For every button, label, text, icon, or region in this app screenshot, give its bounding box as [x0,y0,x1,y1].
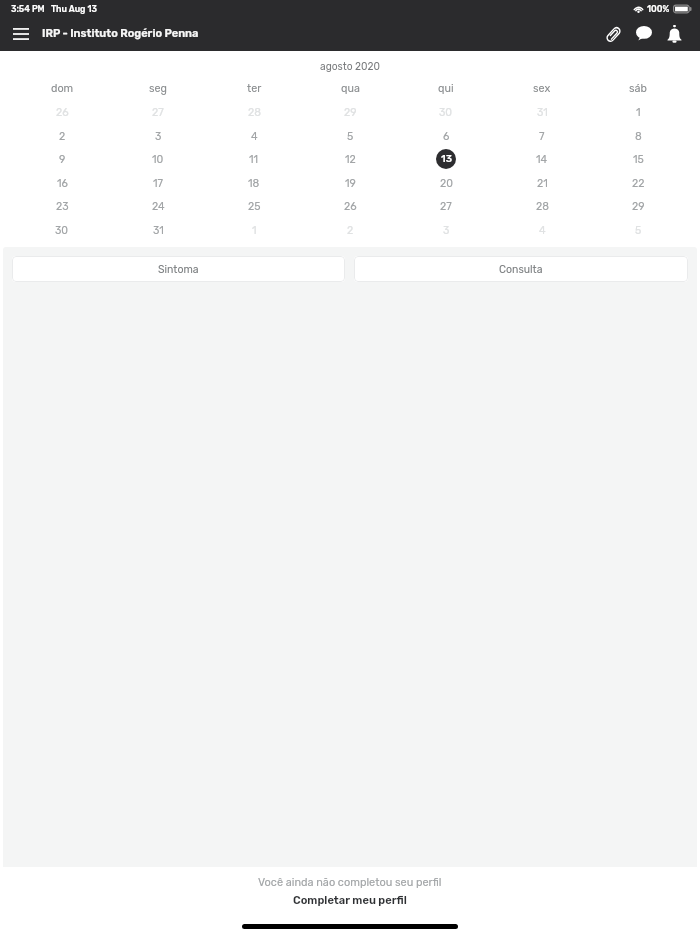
button[interactable]: 11 [243,148,265,170]
button[interactable]: 26 [339,195,361,217]
button[interactable]: 20 [435,172,457,194]
staticText: Thu Aug 13 [51,4,97,14]
staticText: 3 [443,224,450,237]
staticText: 27 [440,200,452,213]
staticText: 16 [57,177,68,190]
button[interactable]: 22 [627,172,649,194]
staticText: Você ainda não completou seu perfil [258,876,442,889]
staticText: sáb [629,82,647,95]
button[interactable]: 13 [436,149,456,169]
button[interactable]: 24 [147,195,169,217]
staticText: 20 [440,177,453,190]
button[interactable]: 30 [435,101,457,123]
staticText: 12 [345,153,356,166]
button[interactable]: 16 [51,172,73,194]
button[interactable]: 27 [435,195,457,217]
button[interactable]: 15 [627,148,649,170]
staticText: 29 [344,106,357,119]
button[interactable]: 6 [435,125,457,147]
button[interactable]: 28 [531,195,553,217]
button[interactable]: 30 [51,219,73,241]
staticText: 30 [55,224,69,237]
staticText: 13 [441,153,452,165]
staticText: 10 [152,153,164,166]
staticText: sex [533,82,551,95]
button[interactable]: 4 [531,219,553,241]
staticText: qui [438,82,454,95]
button[interactable]: 18 [243,172,265,194]
button[interactable]: 28 [243,101,265,123]
staticText: 28 [248,106,261,119]
button[interactable]: 2 [339,219,361,241]
button[interactable]: 27 [147,101,169,123]
button[interactable]: Completar meu perfil [287,892,413,909]
button[interactable]: 14 [531,148,553,170]
staticText: Consulta [499,263,543,275]
staticText: 30 [439,106,453,119]
staticText: seg [149,82,167,95]
button[interactable]: Consulta [354,256,688,282]
staticText: 7 [539,130,545,143]
staticText: 2 [347,224,354,237]
staticText: 6 [443,130,450,143]
staticText: 26 [56,106,69,119]
staticText: 25 [248,200,261,213]
staticText: IRP - Instituto Rogério Penna [42,27,199,40]
button[interactable]: 8 [627,125,649,147]
button[interactable]: 1 [243,219,265,241]
staticText: 4 [539,224,546,237]
button[interactable]: Messages [629,19,659,49]
staticText: 27 [152,106,164,119]
staticText: 17 [153,177,163,190]
button[interactable]: Notifications [659,19,689,49]
button[interactable]: 12 [339,148,361,170]
staticText: qua [341,82,360,95]
staticText: 9 [59,153,66,166]
button[interactable]: Attachments [598,19,628,49]
staticText: 23 [56,200,69,213]
staticText: 2 [59,130,66,143]
button[interactable]: 31 [531,101,553,123]
button[interactable]: 10 [147,148,169,170]
button[interactable]: 25 [243,195,265,217]
button[interactable]: 5 [627,219,649,241]
staticText: Completar meu perfil [293,894,407,907]
staticText: 31 [153,224,164,237]
staticText: 26 [344,200,357,213]
button[interactable]: Sintoma [12,256,345,282]
button[interactable]: 21 [531,172,553,194]
staticText: 22 [632,177,645,190]
button[interactable]: 4 [243,125,265,147]
staticText: 8 [635,130,642,143]
button[interactable]: 29 [339,101,361,123]
button[interactable]: 5 [339,125,361,147]
button[interactable]: 7 [531,125,553,147]
button[interactable]: 2 [51,125,73,147]
staticText: 100% [647,4,670,14]
staticText: 29 [632,200,645,213]
button[interactable]: 29 [627,195,649,217]
button[interactable]: 23 [51,195,73,217]
staticText: 5 [347,130,354,143]
staticText: 1 [252,224,257,237]
button[interactable]: 26 [51,101,73,123]
staticText: 15 [633,153,644,166]
button[interactable]: 3 [435,219,457,241]
staticText: 24 [152,200,165,213]
button[interactable]: 17 [147,172,169,194]
button[interactable]: Open navigation menu [5,18,37,50]
staticText: 31 [537,106,548,119]
button[interactable]: 3 [147,125,169,147]
staticText: 3 [155,130,162,143]
staticText: ter [247,82,262,95]
staticText: 18 [248,177,260,190]
staticText: 21 [537,177,548,190]
button[interactable]: 31 [147,219,169,241]
staticText: 1 [636,106,641,119]
staticText: Sintoma [158,263,199,275]
button[interactable]: 9 [51,148,73,170]
button[interactable]: 1 [627,101,649,123]
button[interactable]: 19 [339,172,361,194]
staticText: agosto 2020 [320,60,380,72]
staticText: 28 [536,200,549,213]
